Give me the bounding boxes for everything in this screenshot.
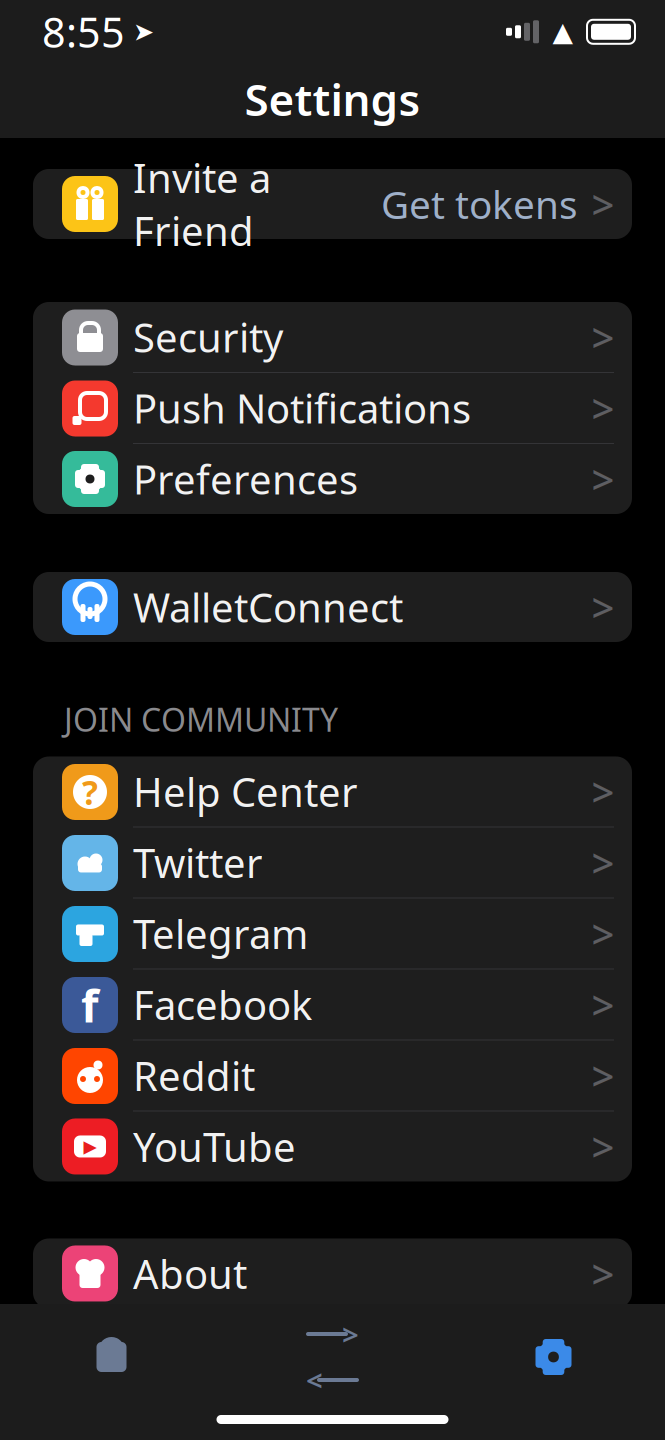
staticText: About: [133, 1247, 247, 1300]
button[interactable]: Telegram: [33, 898, 632, 969]
staticText: >: [591, 1247, 614, 1300]
button[interactable]: Swap: [222, 1318, 443, 1396]
staticText: 8:55: [42, 4, 125, 59]
staticText: Security: [133, 310, 283, 363]
staticText: >: [591, 1049, 614, 1102]
staticText: ▶: [83, 1137, 96, 1156]
staticText: Settings: [244, 70, 420, 128]
button[interactable]: ?: [33, 756, 632, 827]
staticText: >: [591, 381, 614, 434]
staticText: f: [81, 975, 99, 1035]
button[interactable]: Security: [33, 302, 632, 373]
button[interactable]: ▶: [33, 1111, 632, 1181]
staticText: Get tokens: [381, 178, 578, 230]
button[interactable]: Push Notifications: [33, 373, 632, 444]
staticText: >: [591, 177, 614, 230]
staticText: >: [591, 765, 614, 818]
button[interactable]: Preferences: [33, 444, 632, 514]
staticText: Push Notifications: [133, 381, 471, 434]
button[interactable]: Settings: [443, 1318, 664, 1396]
staticText: Help Center: [133, 765, 358, 818]
staticText: ?: [82, 770, 98, 814]
staticText: >: [591, 836, 614, 889]
staticText: ➤: [133, 17, 154, 46]
button[interactable]: f: [33, 969, 632, 1040]
staticText: YouTube: [133, 1120, 296, 1173]
button[interactable]: Wallet: [1, 1318, 222, 1396]
staticText: WalletConnect: [133, 580, 403, 633]
staticText: Twitter: [133, 836, 263, 889]
staticText: Telegram: [133, 907, 308, 960]
button[interactable]: About: [33, 1238, 632, 1308]
staticText: Reddit: [133, 1049, 255, 1102]
staticText: >: [591, 978, 614, 1031]
staticText: >: [591, 310, 614, 363]
button[interactable]: Reddit: [33, 1040, 632, 1111]
staticText: Facebook: [133, 978, 312, 1031]
staticText: >: [591, 580, 614, 633]
staticText: ▲: [552, 17, 573, 47]
button[interactable]: Twitter: [33, 827, 632, 898]
staticText: JOIN COMMUNITY: [64, 698, 338, 740]
staticText: >: [342, 1314, 359, 1353]
staticText: Preferences: [133, 452, 358, 505]
button[interactable]: Invite a Friend: [33, 169, 632, 239]
button[interactable]: WalletConnect: [33, 572, 632, 642]
staticText: Invite a Friend: [133, 151, 271, 257]
staticText: <: [306, 1360, 323, 1399]
staticText: >: [591, 1120, 614, 1173]
staticText: >: [591, 907, 614, 960]
staticText: >: [591, 452, 614, 505]
